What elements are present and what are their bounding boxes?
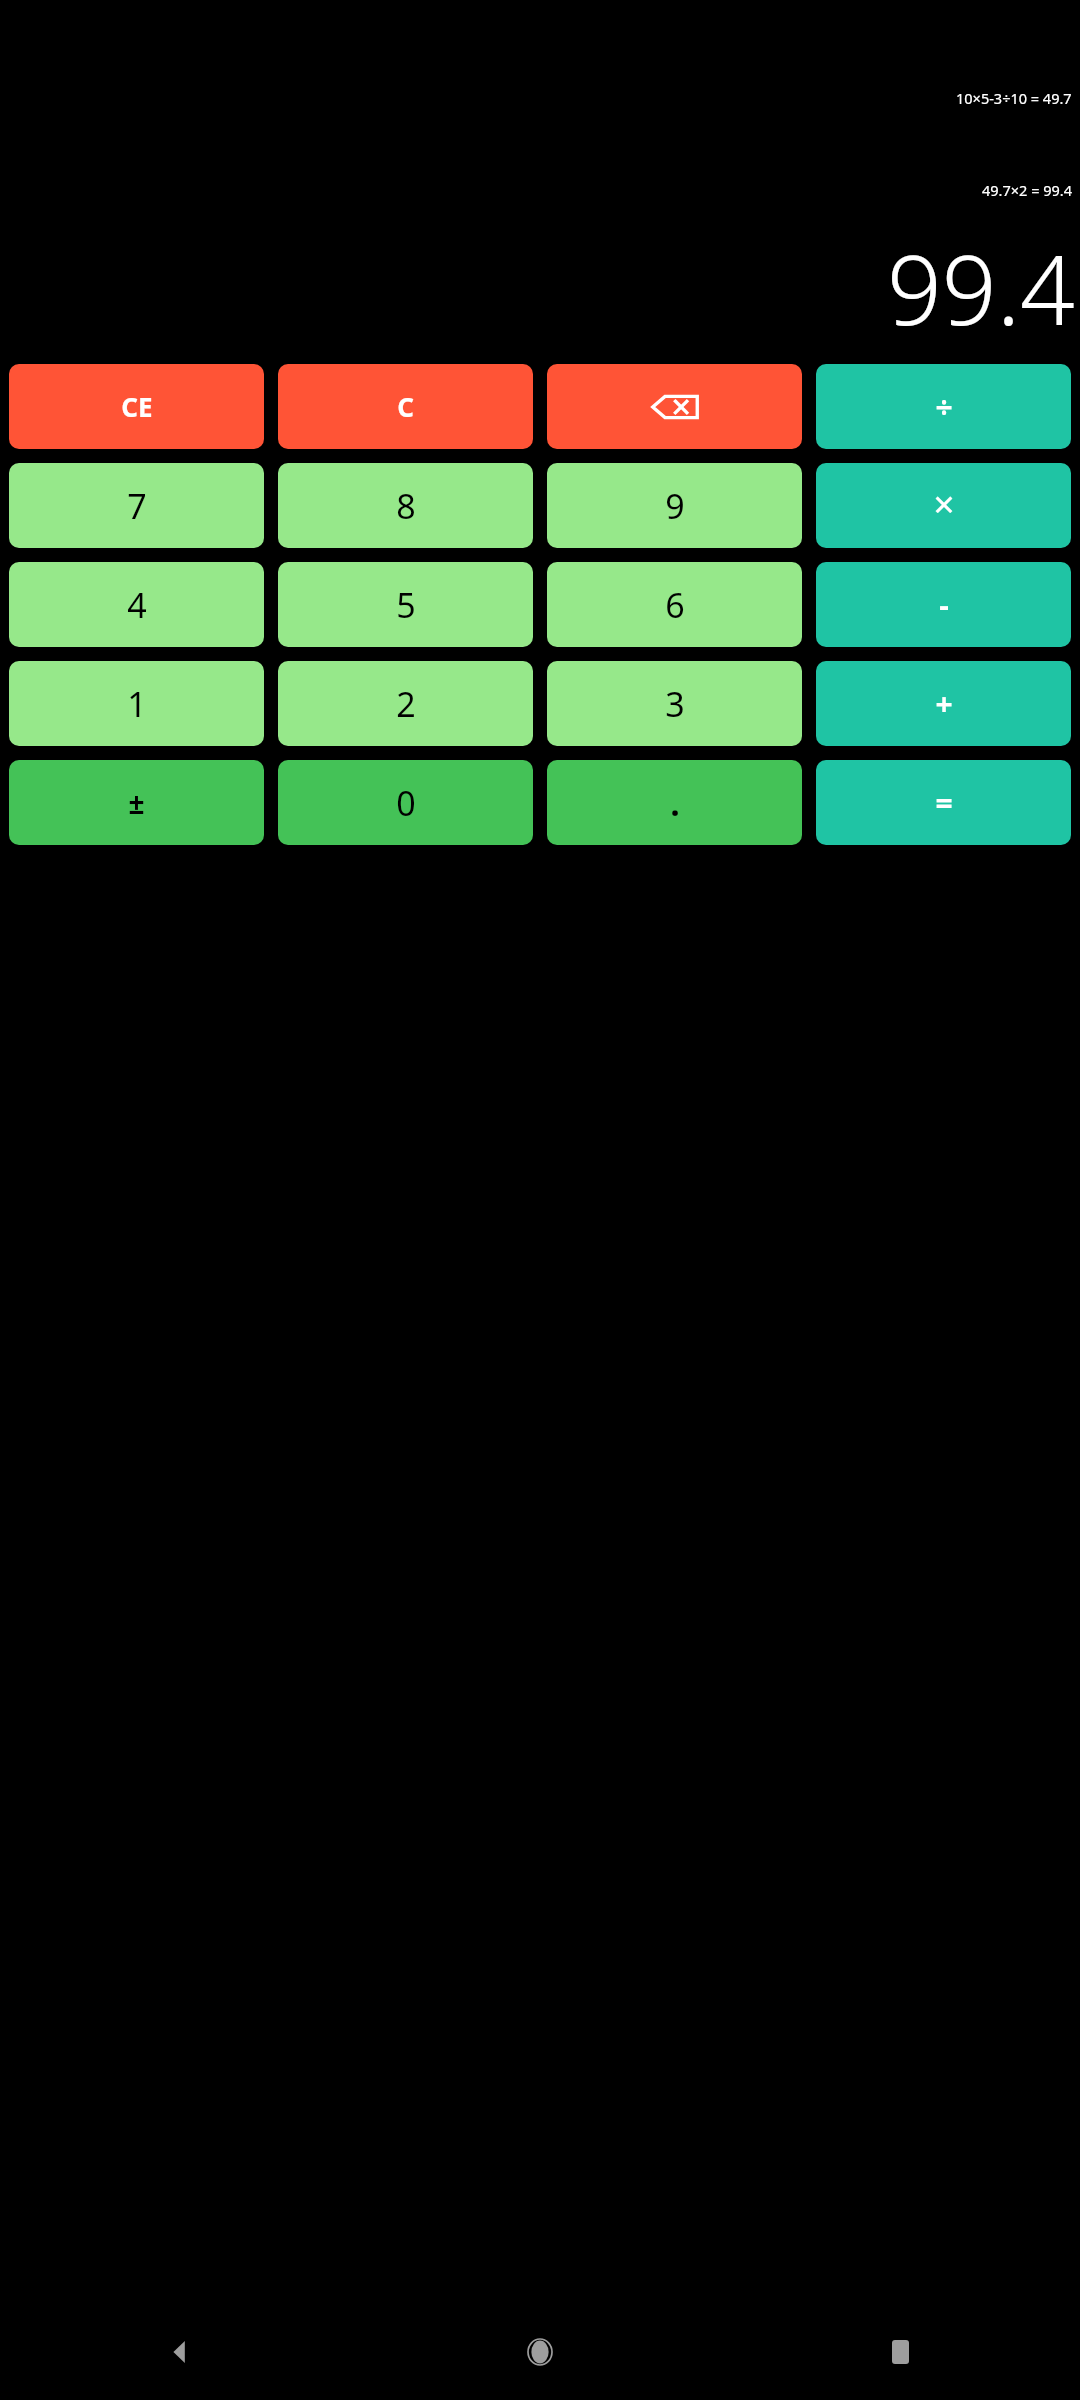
staticText: 49.7×2 = 99.4	[982, 180, 1072, 200]
staticText: ✕	[932, 489, 956, 522]
staticText: ÷	[935, 386, 953, 427]
button[interactable]: -	[816, 562, 1071, 647]
button[interactable]: Recent apps	[720, 2304, 1080, 2400]
staticText: 1	[127, 681, 147, 727]
button[interactable]: CE	[9, 364, 264, 449]
button[interactable]: Home	[360, 2304, 720, 2400]
button[interactable]: .	[547, 760, 802, 845]
staticText: 2	[396, 681, 416, 727]
button[interactable]: 9	[547, 463, 802, 548]
staticText: 99.4	[887, 222, 1075, 353]
staticText: 8	[396, 483, 416, 529]
staticText: ±	[128, 784, 145, 822]
button[interactable]: =	[816, 760, 1071, 845]
button[interactable]: ÷	[816, 364, 1071, 449]
staticText: 5	[396, 582, 416, 628]
button[interactable]: 8	[278, 463, 533, 548]
staticText: C	[397, 389, 414, 424]
button[interactable]: Back	[0, 2304, 360, 2400]
button[interactable]: Backspace	[547, 364, 802, 449]
button[interactable]: 1	[9, 661, 264, 746]
button[interactable]: 7	[9, 463, 264, 548]
staticText: +	[935, 683, 953, 724]
button[interactable]: 3	[547, 661, 802, 746]
staticText: 9	[665, 483, 685, 529]
staticText: CE	[121, 389, 153, 424]
staticText: =	[935, 782, 953, 823]
button[interactable]: 5	[278, 562, 533, 647]
button[interactable]: ±	[9, 760, 264, 845]
staticText: 7	[127, 483, 147, 529]
staticText: -	[939, 584, 949, 625]
button[interactable]: 2	[278, 661, 533, 746]
button[interactable]: 0	[278, 760, 533, 845]
staticText: 6	[665, 582, 685, 628]
button[interactable]: 6	[547, 562, 802, 647]
staticText: 4	[127, 582, 147, 628]
button[interactable]: ✕	[816, 463, 1071, 548]
staticText: 0	[396, 780, 416, 826]
button[interactable]: C	[278, 364, 533, 449]
staticText: .	[670, 780, 680, 826]
staticText: 10×5-3÷10 = 49.7	[956, 88, 1072, 108]
staticText: 3	[665, 681, 685, 727]
button[interactable]: 4	[9, 562, 264, 647]
button[interactable]: +	[816, 661, 1071, 746]
